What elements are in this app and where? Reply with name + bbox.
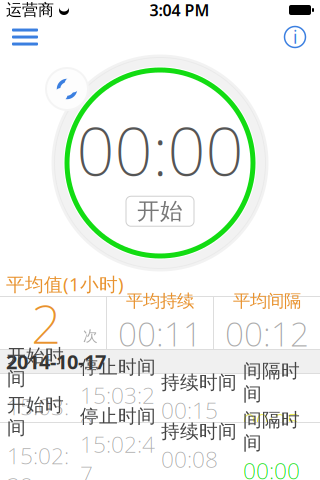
staticText: 00:15 <box>161 395 218 425</box>
staticText: 停止时间 <box>80 356 156 379</box>
staticText: 间隔时间 <box>243 359 300 405</box>
staticText: 00:25 <box>243 406 300 436</box>
staticText: 2 <box>31 288 61 358</box>
staticText: 15:02:38 <box>7 440 69 480</box>
staticText: 次 <box>83 327 98 345</box>
staticText: 开始 <box>137 197 183 225</box>
staticText: 2014-10-17 <box>6 348 106 375</box>
staticText: 3:04 PM <box>149 0 209 21</box>
staticText: i <box>293 25 297 48</box>
staticText: 平均持续 <box>126 290 194 311</box>
staticText: 00:00 <box>76 106 243 194</box>
staticText: 开始时间 <box>7 344 64 390</box>
button[interactable]: 开始 <box>126 196 194 226</box>
staticText: 停止时间 <box>80 405 156 428</box>
staticText: 00:11 <box>118 311 202 356</box>
staticText: 运营商 <box>6 0 54 20</box>
staticText: 开始时间 <box>7 393 64 439</box>
staticText: 间隔时间 <box>243 408 300 454</box>
staticText: 15:03:13 <box>7 391 69 451</box>
staticText: 平均间隔 <box>233 290 301 311</box>
staticText: 00:12 <box>225 311 309 356</box>
staticText: 00:08 <box>161 444 218 474</box>
button[interactable]: Menu <box>3 20 47 54</box>
staticText: 15:03:29 <box>80 380 155 440</box>
staticText: 持续时间 <box>161 420 237 443</box>
staticText: 00:00 <box>243 455 300 480</box>
button[interactable]: 开始时间 <box>0 374 320 422</box>
staticText: 平均值(1小时) <box>6 272 124 296</box>
staticText: 持续时间 <box>161 371 237 394</box>
staticText: 15:02:47 <box>80 429 155 480</box>
button[interactable]: Information <box>273 20 317 54</box>
button[interactable]: 开始时间 <box>0 423 320 471</box>
